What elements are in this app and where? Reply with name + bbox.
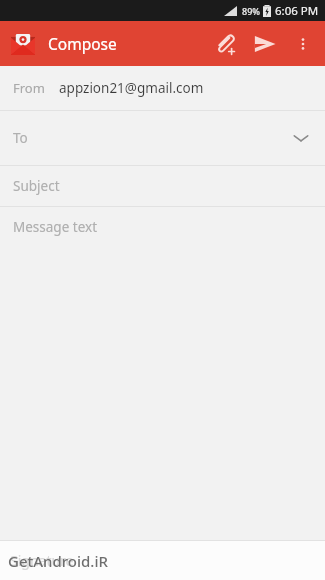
button[interactable]: Subject	[0, 166, 325, 206]
staticText: 6:06 PM	[275, 3, 319, 19]
button[interactable]: Message text	[0, 207, 325, 247]
button[interactable]: To	[0, 111, 325, 165]
button[interactable]: Send	[245, 24, 285, 64]
staticText: Message text	[13, 218, 98, 236]
button[interactable]: App icon	[8, 29, 38, 59]
staticText: From	[13, 79, 45, 97]
staticText: Signature	[10, 551, 74, 570]
button[interactable]: From	[0, 66, 325, 110]
staticText: 89%	[242, 5, 260, 17]
staticText: Subject	[13, 177, 60, 195]
button[interactable]: More options	[285, 26, 321, 62]
staticText: GetAndroid.iR	[8, 551, 108, 571]
staticText: Compose	[48, 33, 117, 54]
button[interactable]: Attach	[205, 24, 245, 64]
staticText: To	[13, 129, 28, 147]
staticText: appzion21@gmail.com	[59, 79, 204, 97]
